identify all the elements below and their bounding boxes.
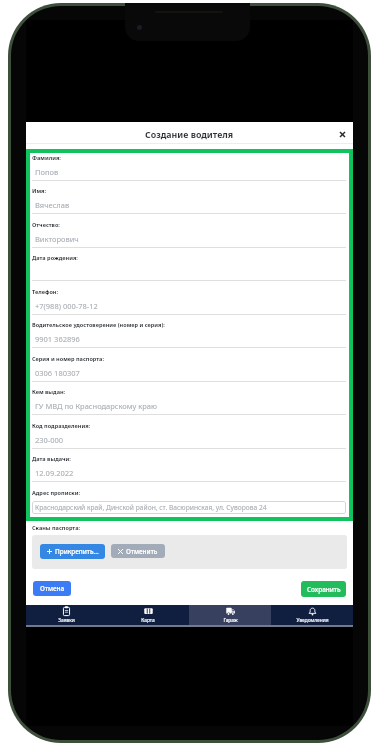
staticText: Код подразделения: [32,422,91,430]
staticText: Телефон: [32,288,59,296]
button[interactable] [32,264,346,281]
button[interactable]: Прикрепить... [40,544,105,559]
staticText: 0306 180307 [35,368,80,378]
staticText: Отменить [126,547,158,556]
staticText: Попов [35,167,59,177]
staticText: Создание водителя [145,129,234,141]
button[interactable]: 230-000 [32,432,346,449]
button[interactable]: Гараж [189,605,271,625]
staticText: Дата выдачи: [32,455,71,463]
button[interactable]: Вячеслав [32,197,346,214]
button[interactable]: 0306 180307 [32,365,346,382]
staticText: Имя: [32,187,46,195]
button[interactable]: +7(988) 000-78-12 [32,298,346,315]
staticText: Вячеслав [35,200,70,210]
button[interactable]: Карта [107,605,189,625]
staticText: Сохранить [307,585,341,594]
staticText: Водительское удостоверение (номер и сери… [32,321,165,329]
button[interactable]: Краснодарский край, Динской район, ст. В… [32,501,346,514]
staticText: Серия и номер паспорта: [32,355,104,363]
staticText: Отчество: [32,221,60,229]
staticText: Дата рождения: [32,254,78,262]
button[interactable]: Заявки [26,605,107,625]
staticText: 230-000 [35,435,64,445]
staticText: Заявки [58,617,75,624]
button[interactable]: Викторович [32,231,346,248]
button[interactable]: Сохранить [301,581,346,597]
staticText: Прикрепить... [55,547,99,556]
staticText: Краснодарский край, Динской район, ст. В… [35,503,267,512]
staticText: +7(988) 000-78-12 [35,301,98,311]
staticText: Викторович [35,234,79,244]
staticText: ГУ МВД по Краснодарскому краю [35,401,158,411]
button[interactable]: 12.09.2022 [32,465,346,482]
button[interactable]: ГУ МВД по Краснодарскому краю [32,398,346,415]
staticText: Сканы паспорта: [32,524,81,532]
button[interactable]: Отмена [33,581,71,596]
button[interactable]: Закрыть [334,126,351,143]
button[interactable]: Попов [32,164,346,181]
button[interactable]: 9901 362896 [32,331,346,348]
button[interactable]: Уведомления [271,605,353,625]
staticText: Адрес прописки: [32,489,81,497]
staticText: Отмена [40,584,65,593]
staticText: Кем выдан: [32,388,66,396]
staticText: 12.09.2022 [35,468,74,478]
staticText: Уведомления [296,617,329,624]
staticText: 9901 362896 [35,334,80,344]
staticText: Карта [141,617,155,624]
staticText: Гараж [223,617,238,624]
button[interactable]: Отменить [111,544,165,558]
staticText: Фамилия: [32,154,61,162]
